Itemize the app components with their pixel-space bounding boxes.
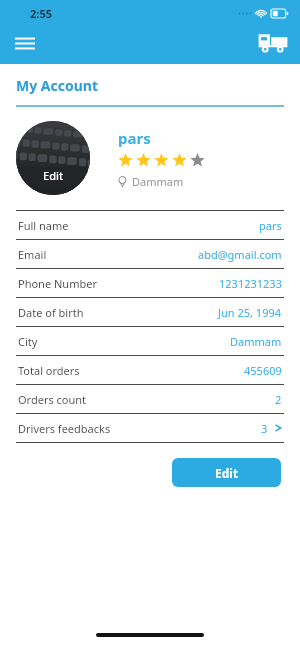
staticText: Edit [215, 465, 239, 481]
staticText: Date of birth [18, 305, 84, 320]
button[interactable]: Edit [172, 458, 281, 487]
button[interactable]: Orders count [16, 385, 284, 413]
staticText: Jun 25, 1994 [218, 305, 282, 320]
staticText: pars [118, 128, 151, 148]
button[interactable]: Edit profile photo [16, 121, 90, 195]
staticText: Drivers feedbacks [18, 421, 111, 436]
staticText: Email [18, 247, 47, 262]
button[interactable]: Open navigation menu [10, 28, 40, 58]
staticText: Full name [18, 218, 69, 233]
button[interactable]: Phone Number [16, 269, 284, 297]
button[interactable]: Date of birth [16, 298, 284, 326]
staticText: 1231231233 [219, 276, 282, 291]
button[interactable]: Full name [16, 211, 284, 239]
staticText: 455609 [244, 363, 282, 378]
staticText: 2 [275, 392, 282, 407]
staticText: Orders count [18, 392, 87, 407]
staticText: 3 [261, 421, 268, 436]
staticText: Edit [43, 168, 64, 183]
staticText: Dammam [230, 334, 282, 349]
staticText: 2:55 [30, 6, 52, 21]
staticText: pars [259, 218, 282, 233]
staticText: Dammam [132, 174, 184, 189]
button[interactable]: Drivers feedbacks [16, 414, 284, 442]
button[interactable]: Deliveries [254, 23, 292, 61]
staticText: City [18, 334, 38, 349]
staticText: Phone Number [18, 276, 97, 291]
button[interactable]: Email [16, 240, 284, 268]
staticText: abd@gmail.com [198, 247, 282, 262]
button[interactable]: Total orders [16, 356, 284, 384]
staticText: My Account [16, 76, 98, 95]
staticText: Total orders [18, 363, 80, 378]
button[interactable]: City [16, 327, 284, 355]
